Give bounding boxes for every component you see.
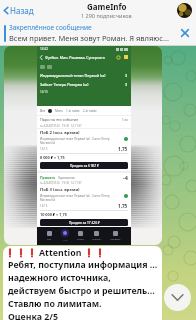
staticText: ПоБ 2 (осн. время) [40, 130, 80, 136]
staticText: Пари на это событие [40, 117, 79, 122]
staticText: 14:15 [40, 90, 48, 94]
staticText: надежного источника, [8, 272, 111, 284]
button[interactable]: Продать за 17 420 ₽ [40, 219, 128, 226]
staticText: 14:15 [40, 147, 48, 151]
staticText: Индивидуальный тотал Первый (м) - Санкт-… [40, 194, 110, 202]
staticText: Профиль [110, 237, 121, 240]
button[interactable]: Scroll to bottom [164, 284, 191, 311]
staticText: 1 290 подписчиков [81, 12, 132, 19]
staticText: 1-й тайм [66, 109, 80, 113]
staticText: Все [40, 109, 46, 113]
staticText: 19:35 12.11.97 [62, 181, 82, 185]
staticText: Ставлю по лимитам. [8, 298, 102, 310]
button[interactable]: Продать за 6 967 ₽ [40, 162, 128, 169]
staticText: Всем привет. Меня зовут Роман. Я являюс.… [9, 33, 170, 43]
staticText: Забьет Теперь Резерва (м) [40, 82, 89, 87]
staticText: Закреплённое сообщение [9, 23, 92, 32]
staticText: 3 [125, 73, 128, 78]
staticText: 1,75 [118, 203, 128, 209]
staticText: 14:32 [40, 47, 49, 51]
staticText: Спорт [77, 237, 84, 240]
button[interactable]: Назад [0, 5, 36, 16]
staticText: ПоБ 3 (осн. время) [40, 187, 80, 193]
staticText: 1 из [122, 118, 128, 122]
button[interactable]: Channel avatar [177, 3, 192, 18]
staticText: -4 [123, 174, 128, 181]
staticText: Топ [47, 237, 52, 240]
staticText: Индивидуальный тотал Первый (м) [40, 73, 106, 78]
button[interactable]: Photo [4, 46, 162, 245]
staticText: Продать за 17 420 ₽ [69, 221, 100, 225]
staticText: 10 000 ₽ × 1,75 [40, 212, 67, 217]
staticText: Матч [55, 109, 63, 113]
staticText: Оценка 2/5 [8, 311, 58, 320]
staticText: Attention [39, 247, 82, 259]
staticText: Продать за 6 967 ₽ [70, 164, 99, 168]
staticText: Индивидуальный тотал Первый (м) - Санкт-… [40, 137, 110, 145]
staticText: № 4234073123 [40, 124, 60, 128]
staticText: Live [63, 238, 68, 241]
staticText: 2-й тайм [83, 109, 97, 113]
staticText: Принято [40, 175, 56, 180]
staticText: Купоны [92, 237, 101, 240]
staticText: GameInfo [87, 1, 127, 12]
staticText: Одиночная [58, 176, 75, 180]
staticText: 3 [125, 82, 128, 87]
staticText: действуем быстро и решительно. [8, 285, 158, 297]
staticText: 8 000 ₽ × 1,75 [40, 155, 65, 160]
staticText: Футбол. Мин. Рашевка. Суперлига [45, 55, 105, 60]
button[interactable]: Attention [3, 246, 162, 320]
staticText: 14:15 [40, 204, 48, 208]
staticText: 1,75 [118, 146, 128, 152]
staticText: Ребят, поступила информация из [8, 259, 158, 271]
button[interactable]: Close pinned message [176, 24, 194, 42]
staticText: 19:35 12.11.97 [62, 124, 82, 128]
staticText: Назад [10, 5, 34, 16]
staticText: № 4234073123 [40, 181, 60, 185]
